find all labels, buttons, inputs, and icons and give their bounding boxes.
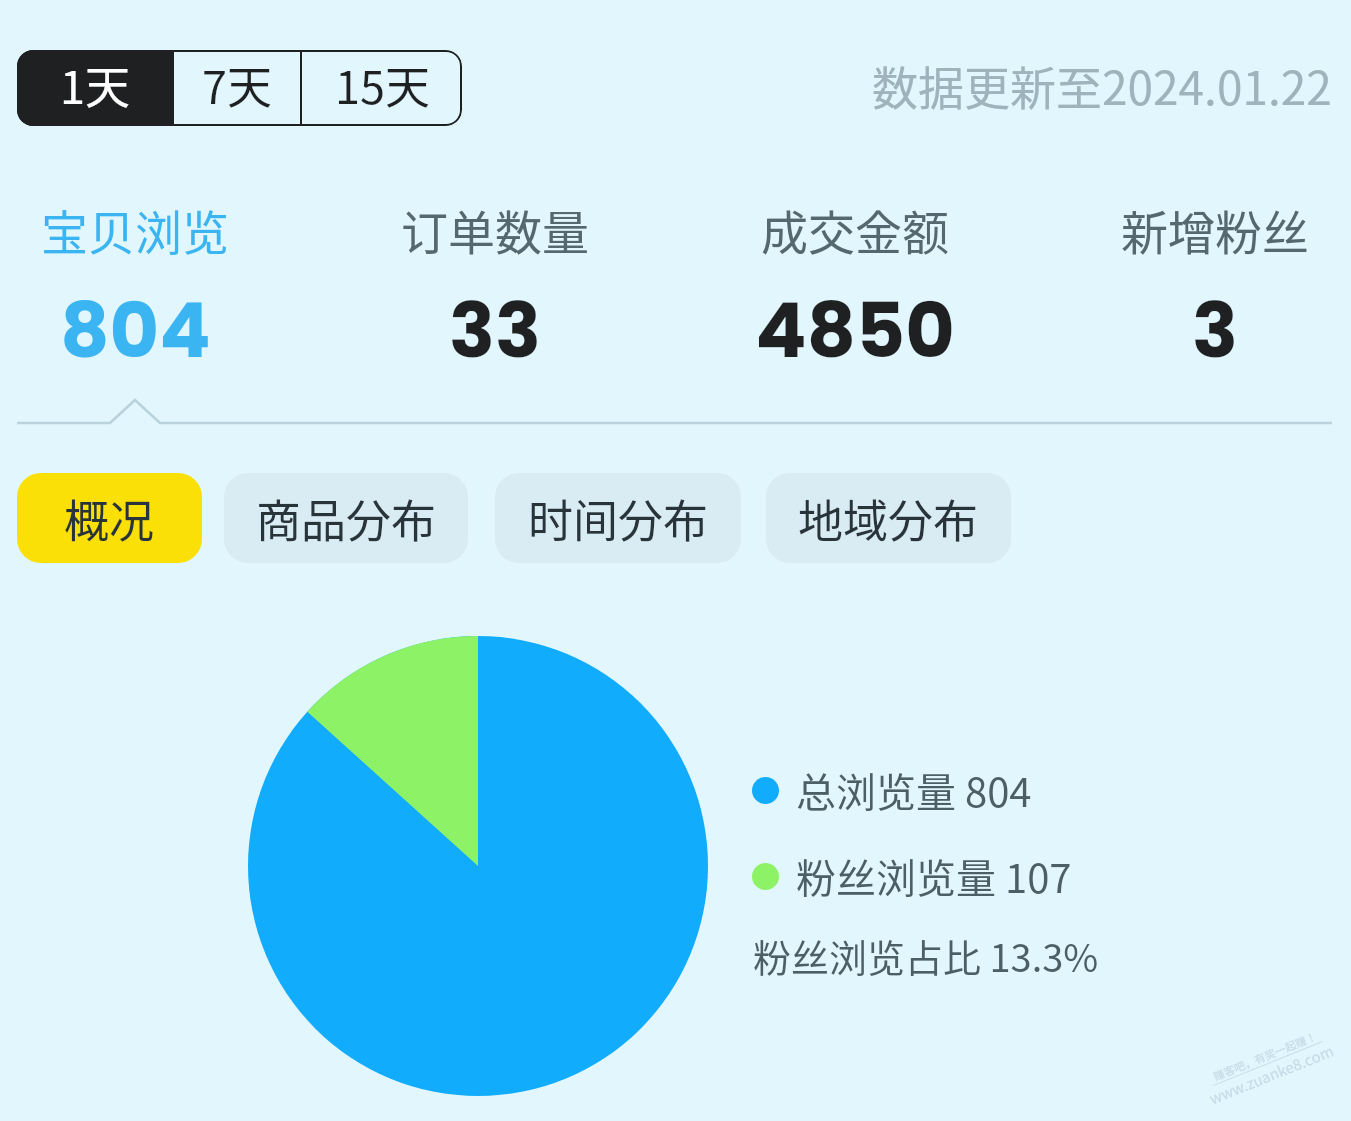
button[interactable]: 浏览量占比饼图 — [248, 636, 708, 1096]
staticText: 新增粉丝 — [1121, 195, 1309, 263]
staticText: 粉丝浏览量 107 — [796, 847, 1072, 905]
staticText: 3 — [1192, 277, 1238, 370]
staticText: 总浏览量 804 — [796, 761, 1032, 819]
button[interactable]: 时间分布 — [495, 473, 741, 563]
button[interactable]: 成交金额 — [685, 195, 1025, 370]
button[interactable]: 15天 — [302, 50, 462, 126]
button[interactable]: 1天 — [17, 50, 172, 126]
staticText: 概况 — [64, 486, 155, 551]
button[interactable]: 概况 — [17, 473, 202, 563]
button[interactable]: 商品分布 — [224, 473, 468, 563]
staticText: 粉丝浏览占比 13.3% — [753, 928, 1099, 983]
staticText: 赚客吧，有奖一起赚！ — [1211, 1028, 1319, 1084]
staticText: 宝贝浏览 — [41, 195, 229, 263]
staticText: 15天 — [335, 52, 430, 117]
staticText: 804 — [60, 277, 211, 370]
button[interactable]: 总浏览量 804 — [752, 761, 1032, 819]
staticText: 33 — [449, 277, 541, 370]
staticText: www.zuanke8.com — [1206, 1039, 1337, 1109]
staticText: 商品分布 — [256, 486, 437, 551]
staticText: 订单数量 — [401, 195, 589, 263]
staticText: 成交金额 — [761, 195, 949, 263]
staticText: 时间分布 — [528, 486, 709, 551]
staticText: 4850 — [755, 277, 955, 370]
staticText: 1天 — [60, 52, 130, 117]
button[interactable]: 地域分布 — [766, 473, 1011, 563]
button[interactable]: 新增粉丝 — [1045, 195, 1351, 370]
button[interactable]: 订单数量 — [325, 195, 665, 370]
staticText: 地域分布 — [798, 486, 979, 551]
staticText: 7天 — [202, 52, 272, 117]
button[interactable]: 7天 — [174, 50, 300, 126]
staticText: 数据更新至2024.01.22 — [872, 52, 1332, 119]
button[interactable]: 粉丝浏览量 107 — [752, 847, 1072, 905]
button[interactable]: 宝贝浏览 — [0, 195, 305, 370]
